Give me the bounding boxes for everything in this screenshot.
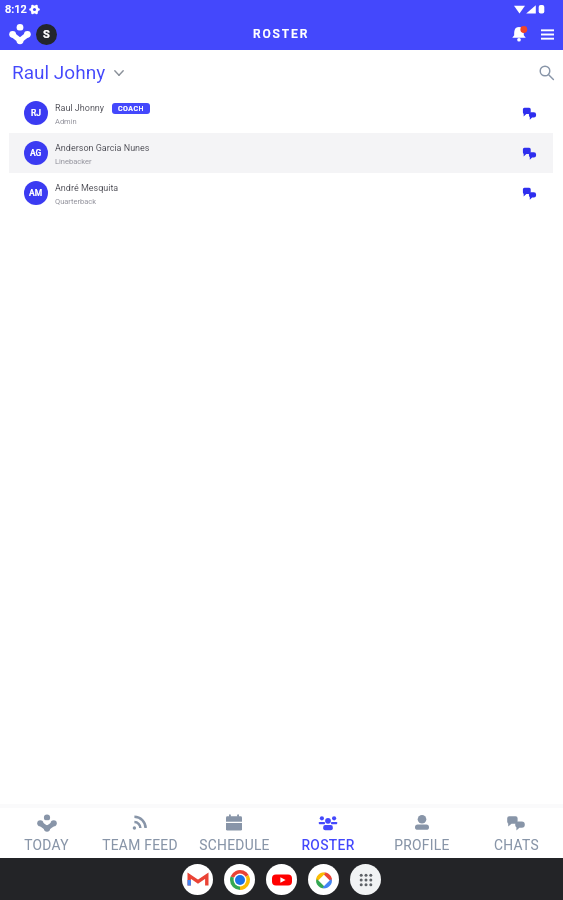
staticText: André Mesquita [55, 183, 119, 194]
staticText: Admin [55, 117, 77, 126]
staticText: Anderson Garcia Nunes [55, 143, 150, 154]
button[interactable]: SCHEDULE [187, 814, 281, 853]
staticText: SCHEDULE [199, 837, 270, 853]
button[interactable]: Photos [308, 864, 339, 895]
button[interactable]: CHATS [469, 814, 563, 853]
button[interactable]: Search [533, 59, 559, 85]
button[interactable]: AG [9, 133, 553, 173]
button[interactable]: All apps [350, 864, 381, 895]
button[interactable]: Notifications [507, 22, 531, 46]
button[interactable]: Chrome [224, 864, 255, 895]
button[interactable]: Navigation drawer [536, 23, 558, 45]
button[interactable]: Open app menu [7, 21, 33, 47]
button[interactable]: YouTube [266, 864, 297, 895]
staticText: Quarterback [55, 197, 97, 206]
staticText: TODAY [24, 837, 69, 853]
staticText: Raul Jhonny [55, 103, 105, 114]
staticText: Linebacker [55, 157, 92, 166]
button[interactable]: Select team [36, 24, 57, 45]
staticText: S [43, 28, 50, 41]
button[interactable]: TODAY [0, 814, 93, 853]
staticText: CHATS [494, 837, 539, 853]
button[interactable]: Message André Mesquita [516, 180, 542, 206]
button[interactable]: PROFILE [375, 814, 469, 853]
button[interactable]: Message Anderson Garcia Nunes [516, 140, 542, 166]
staticText: PROFILE [394, 837, 450, 853]
staticText: ROSTER [301, 837, 355, 853]
button[interactable]: ROSTER [281, 814, 375, 853]
staticText: ROSTER [253, 27, 310, 41]
staticText: TEAM FEED [102, 837, 178, 853]
button[interactable]: Raul Johny [0, 59, 130, 85]
staticText: AG [30, 148, 42, 158]
button[interactable]: Gmail [182, 864, 213, 895]
staticText: RJ [31, 108, 42, 118]
button[interactable]: RJ [9, 93, 553, 133]
staticText: 8:12 [5, 3, 27, 16]
button[interactable]: AM [9, 173, 553, 213]
button[interactable]: TEAM FEED [93, 814, 187, 853]
button[interactable]: Message Raul Jhonny [516, 100, 542, 126]
staticText: Raul Johny [12, 61, 106, 83]
staticText: COACH [118, 105, 144, 113]
staticText: AM [29, 188, 43, 198]
